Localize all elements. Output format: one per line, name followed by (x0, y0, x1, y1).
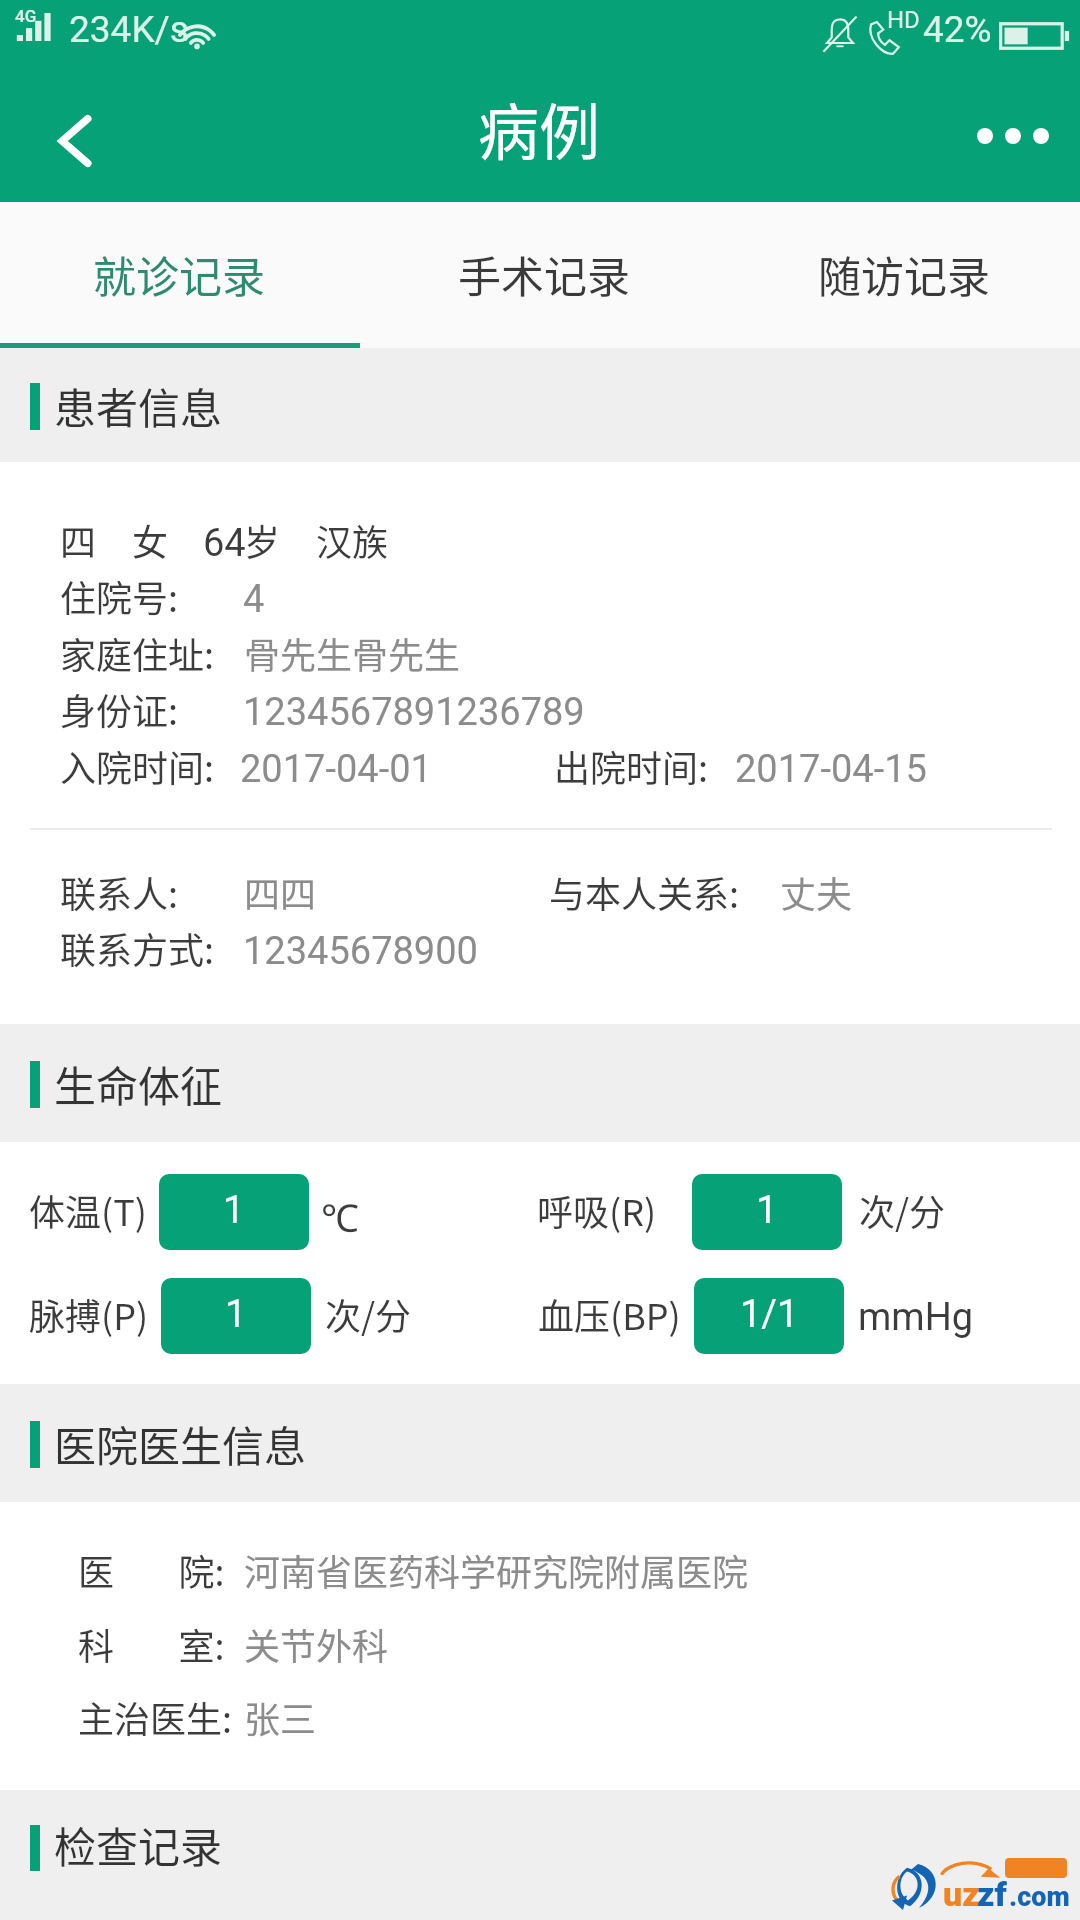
button[interactable]: 1 (161, 1278, 311, 1354)
staticText: 手术记录 (458, 243, 630, 305)
staticText: 2017-04-01 (240, 747, 432, 792)
staticText: 2017-04-15 (735, 747, 927, 792)
staticText: 住院号: (60, 570, 179, 622)
staticText: 次/分 (325, 1288, 412, 1340)
staticText: 河南省医药科学研究院附属医院 (244, 1544, 749, 1596)
staticText: 64 (203, 521, 246, 566)
staticText: 四四 (244, 866, 317, 918)
staticText: 身份证: (60, 683, 179, 735)
button[interactable]: 医院医生信息 (0, 1384, 1080, 1502)
staticText: 体温(T) (29, 1184, 147, 1236)
staticText: mmHg (858, 1295, 974, 1340)
staticText: 科 室: (78, 1618, 225, 1670)
button[interactable]: 1 (692, 1174, 842, 1250)
staticText: 就诊记录 (93, 243, 265, 305)
staticText: 与本人关系: (549, 866, 740, 918)
staticText: 234K/s (69, 8, 189, 51)
button[interactable]: 随访记录 (720, 202, 1080, 348)
staticText: 次/分 (859, 1184, 946, 1236)
staticText: 出院时间: (554, 740, 709, 792)
staticText: 检查记录 (54, 1814, 223, 1875)
staticText: 1/1 (740, 1292, 799, 1337)
staticText: 呼吸(R) (537, 1184, 657, 1236)
staticText: 家庭住址: (60, 627, 215, 679)
staticText: 主治医生: (78, 1691, 233, 1743)
staticText: 骨先生骨先生 (244, 627, 461, 679)
staticText: 1 (223, 1188, 245, 1233)
staticText: 入院时间: (60, 740, 215, 792)
staticText: uz (943, 1874, 980, 1914)
staticText: 脉搏(P) (29, 1288, 149, 1340)
staticText: .com (1009, 1881, 1070, 1913)
staticText: 1 (225, 1292, 247, 1337)
staticText: ℃ (321, 1191, 359, 1243)
button[interactable]: Back (0, 70, 150, 202)
staticText: 4 (243, 577, 265, 622)
staticText: 42% (923, 8, 992, 51)
staticText: 12345678900 (243, 929, 478, 974)
staticText: 四 女 (60, 514, 205, 566)
button[interactable]: 1/1 (694, 1278, 844, 1354)
staticText: 血压(BP) (538, 1288, 681, 1340)
staticText: 医院医生信息 (54, 1413, 307, 1474)
button[interactable]: 就诊记录 (0, 202, 360, 348)
staticText: zf (977, 1874, 1007, 1914)
staticText: 丈夫 (780, 866, 853, 918)
button[interactable]: 检查记录 (0, 1790, 1080, 1920)
button[interactable]: More options (950, 70, 1080, 202)
staticText: 1 (756, 1188, 778, 1233)
staticText: 联系方式: (60, 922, 215, 974)
staticText: 患者信息 (54, 375, 223, 436)
staticText: 岁 汉族 (244, 514, 389, 566)
staticText: HD (887, 6, 920, 34)
staticText: 关节外科 (244, 1618, 389, 1670)
button[interactable]: 手术记录 (360, 202, 720, 348)
staticText: 4G (15, 6, 37, 26)
button[interactable]: 患者信息 (0, 348, 1080, 462)
staticText: 1234567891236789 (243, 690, 585, 735)
staticText: 医 院: (78, 1544, 225, 1596)
button[interactable]: 1 (159, 1174, 309, 1250)
staticText: 病例 (478, 84, 601, 172)
staticText: 生命体征 (54, 1053, 223, 1114)
staticText: 联系人: (60, 866, 179, 918)
staticText: 张三 (244, 1691, 317, 1743)
staticText: 随访记录 (818, 243, 990, 305)
button[interactable]: 生命体征 (0, 1024, 1080, 1142)
